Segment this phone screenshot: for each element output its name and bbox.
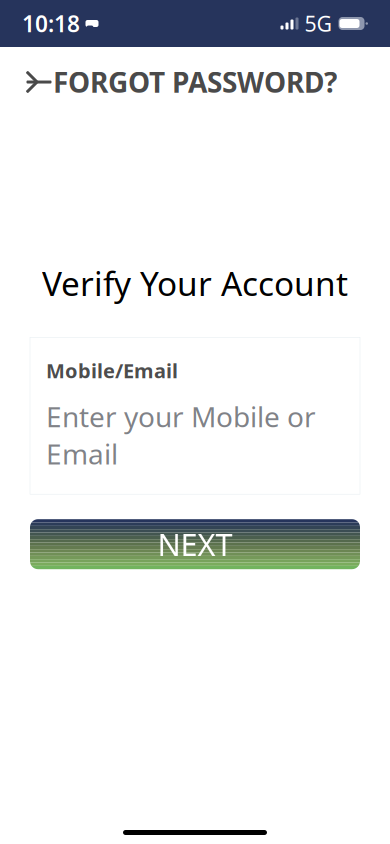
staticText: Enter your Mobile or Email bbox=[46, 398, 316, 472]
button[interactable]: Back bbox=[12, 56, 64, 108]
button[interactable]: Mobile/Email bbox=[30, 337, 360, 494]
staticText: Mobile/Email bbox=[46, 357, 178, 384]
staticText: 5G bbox=[304, 9, 332, 38]
staticText: Verify Your Account bbox=[42, 261, 348, 305]
staticText: 10:18 bbox=[22, 8, 80, 38]
staticText: NEXT bbox=[157, 524, 232, 564]
button[interactable]: NEXT bbox=[30, 519, 360, 569]
staticText: FORGOT PASSWORD? bbox=[53, 63, 337, 101]
